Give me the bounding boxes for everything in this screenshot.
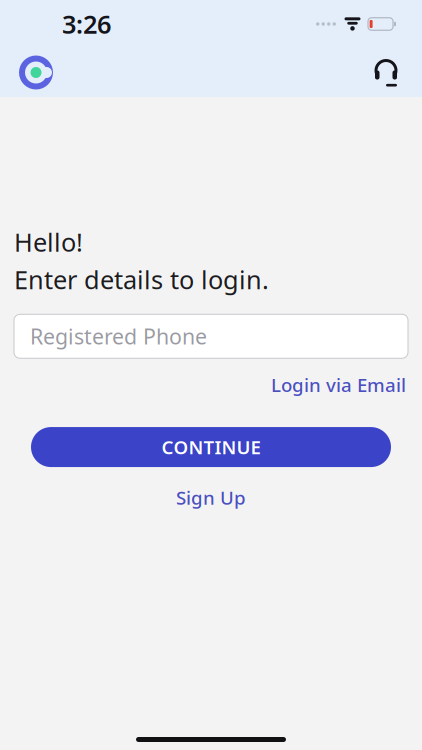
staticText: Sign Up: [176, 485, 246, 510]
button[interactable]: Login via Email: [269, 368, 408, 401]
staticText: 3:26: [62, 7, 111, 41]
button[interactable]: Customer support: [364, 50, 408, 94]
button[interactable]: CONTINUE: [31, 427, 391, 467]
staticText: Registered Phone: [30, 322, 207, 350]
button[interactable]: Sign Up: [166, 479, 256, 516]
staticText: Login via Email: [271, 372, 406, 397]
button[interactable]: Home: [14, 50, 58, 94]
staticText: CONTINUE: [161, 435, 260, 459]
staticText: Enter details to login.: [14, 263, 269, 296]
button[interactable]: Registered Phone: [14, 314, 408, 358]
staticText: Hello!: [14, 225, 83, 259]
